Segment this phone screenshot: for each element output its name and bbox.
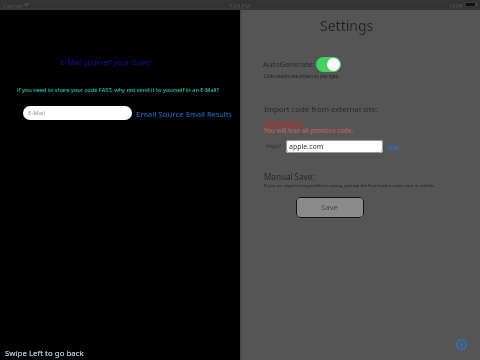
staticText: E-Mail yourself your Code! xyxy=(0,57,226,67)
staticText: If you are experiencing problems saving,… xyxy=(264,183,435,189)
button[interactable]: Swipe Left to go back xyxy=(5,348,84,359)
button[interactable]: Go! xyxy=(387,142,400,152)
button[interactable]: apple.com xyxy=(286,140,383,153)
staticText: You will lose all previous code. xyxy=(264,126,354,134)
button[interactable]: Info xyxy=(456,339,467,350)
button[interactable]: Save xyxy=(296,197,364,218)
staticText: E-Mail xyxy=(28,109,46,117)
staticText: AutoGenerate: xyxy=(263,59,315,69)
staticText: Save xyxy=(321,202,339,213)
staticText: Email Results xyxy=(186,109,232,119)
staticText: Email Source xyxy=(136,109,184,120)
staticText: http:// xyxy=(266,143,281,150)
staticText: Go! xyxy=(387,142,400,152)
staticText: apple.com xyxy=(289,142,324,151)
staticText: WARNING: xyxy=(264,119,305,130)
staticText: 7:04 PM xyxy=(229,2,251,10)
staticText: Carrier xyxy=(3,2,23,10)
staticText: Settings xyxy=(320,16,374,35)
staticText: if you need to share your code FAST, why… xyxy=(0,86,238,94)
staticText: Code results are shown as you type. xyxy=(264,73,340,79)
button[interactable]: Email Results xyxy=(186,109,232,119)
staticText: Manual Save: xyxy=(264,171,315,182)
staticText: Import code from external site: xyxy=(264,104,379,115)
button[interactable]: E-Mail xyxy=(23,106,132,120)
button[interactable]: AutoGenerate toggle xyxy=(316,57,341,72)
staticText: 100% xyxy=(449,2,464,10)
staticText: Swipe Left to go back xyxy=(5,348,84,359)
button[interactable]: Email Source xyxy=(136,109,184,120)
